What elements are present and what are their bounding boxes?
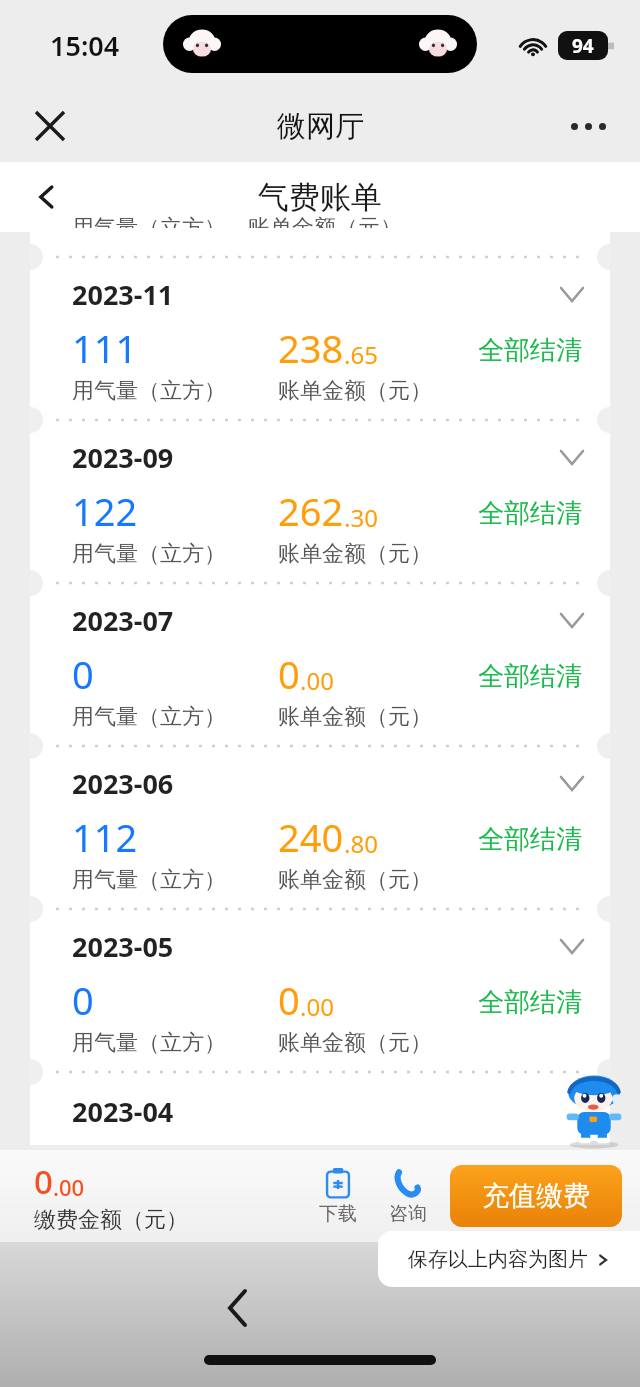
staticText: .80 bbox=[344, 827, 378, 860]
staticText: 2023-07 bbox=[72, 602, 174, 639]
other: Expand bbox=[552, 763, 592, 803]
button[interactable]: 2023-11 bbox=[30, 246, 610, 409]
staticText: 微网厅 bbox=[277, 108, 364, 145]
staticText: 用气量（立方） bbox=[72, 866, 226, 894]
button[interactable]: 充值缴费 bbox=[450, 1165, 622, 1227]
staticText: 用气量（立方） bbox=[72, 377, 226, 405]
staticText: .30 bbox=[344, 501, 378, 534]
button[interactable]: More options bbox=[560, 98, 616, 154]
button[interactable]: 2023-09 bbox=[30, 409, 610, 572]
staticText: 用气量（立方） bbox=[72, 1029, 226, 1057]
staticText: 111 bbox=[72, 322, 138, 374]
staticText: 全部结清 bbox=[478, 334, 582, 367]
staticText: 2023-04 bbox=[72, 1093, 174, 1130]
staticText: 账单金额（元） bbox=[278, 866, 432, 894]
staticText: 用气量（立方） bbox=[72, 540, 226, 568]
staticText: .00 bbox=[300, 664, 334, 697]
staticText: 账单金额（元） bbox=[278, 377, 432, 405]
staticText: 全部结清 bbox=[478, 497, 582, 530]
staticText: .00 bbox=[300, 990, 334, 1023]
other: Expand bbox=[552, 926, 592, 966]
staticText: 下载 bbox=[319, 1202, 357, 1226]
staticText: 0 bbox=[72, 648, 94, 700]
button[interactable]: 2023-06 bbox=[30, 735, 610, 898]
staticText: 0 bbox=[72, 974, 94, 1026]
button[interactable]: 保存以上内容为图片 bbox=[378, 1231, 640, 1287]
staticText: 122 bbox=[72, 485, 138, 537]
staticText: 0 bbox=[278, 648, 300, 700]
staticText: 2023-09 bbox=[72, 439, 174, 476]
staticText: 94 bbox=[572, 33, 594, 59]
button[interactable]: 下载 bbox=[310, 1166, 366, 1226]
other: Expand bbox=[552, 274, 592, 314]
button[interactable]: Back bbox=[20, 170, 74, 224]
staticText: 262 bbox=[278, 485, 344, 537]
staticText: 保存以上内容为图片 bbox=[408, 1247, 588, 1272]
staticText: 账单金额（元） bbox=[278, 540, 432, 568]
staticText: 咨询 bbox=[389, 1202, 427, 1226]
staticText: .65 bbox=[344, 338, 378, 371]
staticText: 缴费金额（元） bbox=[34, 1206, 188, 1234]
staticText: 全部结清 bbox=[478, 823, 582, 856]
other: Expand bbox=[552, 437, 592, 477]
staticText: 用气量（立方） bbox=[72, 703, 226, 731]
button[interactable]: Close bbox=[22, 98, 78, 154]
staticText: 0 bbox=[278, 974, 300, 1026]
staticText: .00 bbox=[53, 1172, 85, 1202]
staticText: 0 bbox=[34, 1159, 53, 1204]
staticText: 账单金额（元） bbox=[278, 703, 432, 731]
staticText: 240 bbox=[278, 811, 344, 863]
button[interactable]: Back bbox=[200, 1270, 276, 1346]
button[interactable]: 2023-07 bbox=[30, 572, 610, 735]
staticText: 气费账单 bbox=[258, 178, 382, 217]
button[interactable]: 咨询 bbox=[380, 1166, 436, 1226]
staticText: 238 bbox=[278, 322, 344, 374]
other: Expand bbox=[552, 600, 592, 640]
staticText: 账单金额（元） bbox=[278, 1029, 432, 1057]
staticText: 全部结清 bbox=[478, 986, 582, 1019]
staticText: 2023-05 bbox=[72, 928, 174, 965]
staticText: 2023-06 bbox=[72, 765, 174, 802]
staticText: 用气量（立方） bbox=[72, 214, 226, 228]
staticText: 2023-11 bbox=[72, 276, 174, 313]
staticText: 账单金额（元） bbox=[248, 214, 402, 228]
staticText: 15:04 bbox=[50, 27, 120, 64]
staticText: 112 bbox=[72, 811, 138, 863]
staticText: 全部结清 bbox=[478, 660, 582, 693]
button[interactable]: 2023-05 bbox=[30, 898, 610, 1061]
staticText: 充值缴费 bbox=[482, 1179, 590, 1213]
